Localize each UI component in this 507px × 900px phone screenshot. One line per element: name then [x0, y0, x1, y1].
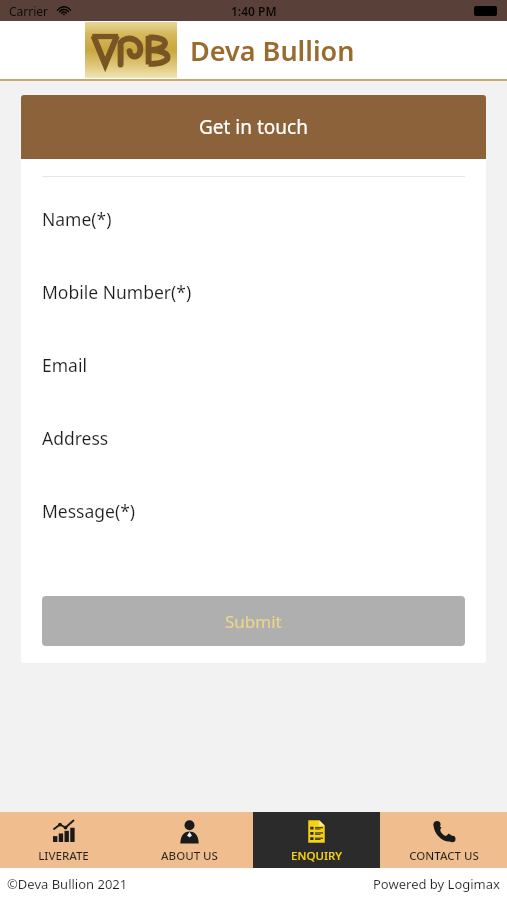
button[interactable]: Name(*) — [42, 207, 465, 280]
button[interactable]: Submit — [42, 596, 465, 646]
staticText: LIVERATE — [38, 848, 89, 864]
staticText: Email — [42, 353, 87, 377]
button[interactable]: Address — [42, 426, 465, 499]
staticText: 1:40 PM — [231, 3, 277, 19]
other: Contact us — [431, 819, 456, 844]
staticText: Submit — [225, 610, 282, 633]
other: About us — [177, 819, 202, 844]
staticText: ENQUIRY — [291, 848, 342, 864]
button[interactable]: Live rate — [0, 812, 126, 868]
staticText: Carrier — [9, 3, 49, 19]
staticText: Get in touch — [199, 114, 308, 140]
staticText: Name(*) — [42, 207, 112, 231]
button[interactable]: Enquiry — [253, 812, 380, 868]
staticText: ABOUT US — [161, 848, 218, 864]
staticText: ©Deva Bullion 2021 — [7, 875, 128, 893]
staticText: Mobile Number(*) — [42, 280, 192, 304]
button[interactable]: About us — [126, 812, 253, 868]
button[interactable]: Message(*) — [42, 499, 465, 572]
other: Enquiry — [304, 819, 329, 844]
other: Live rate — [51, 819, 76, 844]
button[interactable]: Email — [42, 353, 465, 426]
staticText: Address — [42, 426, 109, 450]
staticText: Deva Bullion — [190, 32, 355, 69]
button[interactable]: Mobile Number(*) — [42, 280, 465, 353]
staticText: CONTACT US — [409, 848, 479, 864]
button[interactable]: Contact us — [380, 812, 507, 868]
staticText: Message(*) — [42, 499, 136, 523]
staticText: Powered by Logimax — [373, 875, 500, 893]
